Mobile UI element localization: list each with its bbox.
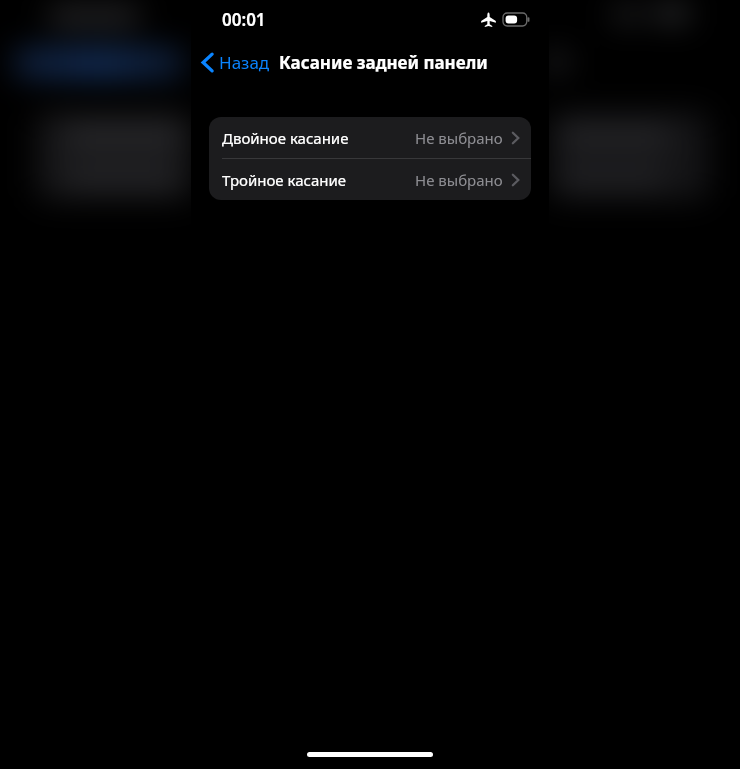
staticText: Назад — [219, 51, 270, 74]
staticText: Не выбрано — [415, 170, 503, 190]
staticText: Касание задней панели — [279, 51, 488, 74]
button[interactable]: Назад — [196, 47, 276, 78]
staticText: 00:01 — [222, 8, 266, 31]
staticText: Двойное касание — [222, 128, 349, 148]
button[interactable]: Тройное касание — [209, 159, 531, 200]
staticText: Тройное касание — [222, 170, 347, 190]
staticText: Не выбрано — [415, 128, 503, 148]
other: Home indicator — [0, 747, 740, 769]
button[interactable]: Двойное касание — [209, 117, 531, 158]
